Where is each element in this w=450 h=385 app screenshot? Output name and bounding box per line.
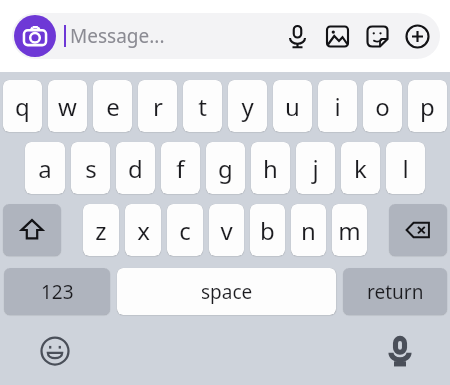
button[interactable]: n xyxy=(291,204,326,256)
staticText: space xyxy=(201,279,253,305)
staticText: q xyxy=(15,90,30,123)
staticText: g xyxy=(218,152,233,185)
button[interactable]: m xyxy=(332,204,367,256)
button[interactable]: b xyxy=(250,204,285,256)
button[interactable]: Photos xyxy=(322,21,352,51)
staticText: c xyxy=(179,214,191,247)
staticText: w xyxy=(58,90,77,123)
staticText: b xyxy=(260,214,275,247)
button[interactable]: Voice input xyxy=(378,329,422,373)
staticText: o xyxy=(375,90,390,123)
button[interactable]: Backspace xyxy=(389,204,447,256)
staticText: i xyxy=(334,90,341,123)
staticText: j xyxy=(312,152,319,185)
button[interactable]: u xyxy=(273,80,312,132)
button[interactable]: v xyxy=(209,204,244,256)
staticText: s xyxy=(85,152,97,185)
staticText: d xyxy=(128,152,143,185)
staticText: m xyxy=(338,214,361,247)
staticText: f xyxy=(176,152,185,185)
staticText: t xyxy=(198,90,207,123)
button[interactable]: space xyxy=(117,268,336,315)
button[interactable]: e xyxy=(93,80,132,132)
button[interactable]: l xyxy=(386,142,425,194)
staticText: 123 xyxy=(41,279,74,305)
button[interactable]: s xyxy=(71,142,110,194)
button[interactable]: t xyxy=(183,80,222,132)
staticText: Message... xyxy=(70,23,165,49)
button[interactable]: Stickers xyxy=(362,21,392,51)
staticText: return xyxy=(367,279,424,305)
staticText: x xyxy=(137,214,150,247)
button[interactable]: c xyxy=(167,204,203,256)
staticText: e xyxy=(106,90,120,123)
staticText: y xyxy=(241,90,254,123)
button[interactable]: x xyxy=(125,204,161,256)
staticText: l xyxy=(402,152,409,185)
button[interactable]: q xyxy=(3,80,42,132)
button[interactable]: Voice message xyxy=(282,21,312,51)
button[interactable]: j xyxy=(296,142,335,194)
button[interactable]: g xyxy=(206,142,245,194)
staticText: h xyxy=(263,152,278,185)
button[interactable]: return xyxy=(343,268,447,315)
button[interactable]: i xyxy=(318,80,357,132)
button[interactable]: d xyxy=(116,142,155,194)
button[interactable]: z xyxy=(83,204,119,256)
button[interactable]: a xyxy=(25,142,65,194)
button[interactable]: y xyxy=(228,80,267,132)
staticText: k xyxy=(354,152,367,185)
button[interactable]: Shift xyxy=(3,204,61,256)
button[interactable]: r xyxy=(138,80,177,132)
staticText: a xyxy=(38,152,52,185)
button[interactable]: h xyxy=(251,142,290,194)
button[interactable]: 123 xyxy=(4,268,110,315)
staticText: n xyxy=(301,214,316,247)
button[interactable]: Emoji xyxy=(33,329,77,373)
button[interactable]: k xyxy=(341,142,380,194)
staticText: v xyxy=(220,214,233,247)
staticText: u xyxy=(285,90,300,123)
button[interactable]: p xyxy=(408,80,447,132)
staticText: z xyxy=(95,214,107,247)
staticText: p xyxy=(420,90,435,123)
button[interactable]: Message... xyxy=(66,23,282,49)
button[interactable]: More options xyxy=(402,21,432,51)
button[interactable]: f xyxy=(161,142,200,194)
button[interactable]: w xyxy=(48,80,87,132)
staticText: r xyxy=(153,90,163,123)
button[interactable]: Camera xyxy=(14,15,56,57)
button[interactable]: o xyxy=(363,80,402,132)
